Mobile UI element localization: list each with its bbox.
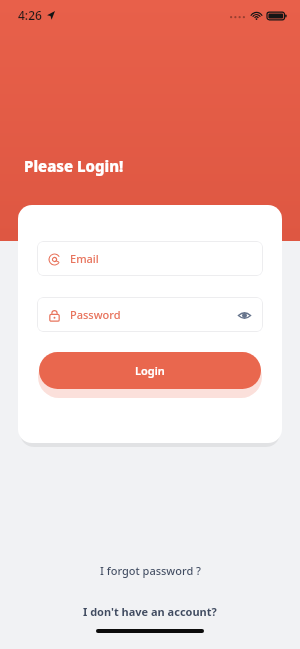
staticText: I forgot password ?	[100, 563, 201, 578]
staticText: Password	[70, 307, 121, 322]
staticText: Please Login!	[24, 156, 124, 176]
button[interactable]: I don't have an account?	[67, 598, 233, 625]
button[interactable]: Login	[39, 352, 261, 389]
button[interactable]: Password	[37, 297, 263, 332]
staticText: Email	[70, 251, 99, 266]
staticText: 4:26	[18, 7, 42, 23]
button[interactable]: Email	[37, 241, 263, 276]
button[interactable]: I forgot password ?	[84, 557, 217, 584]
staticText: Login	[135, 363, 165, 378]
button[interactable]: Show password	[235, 306, 253, 324]
staticText: I don't have an account?	[83, 604, 217, 619]
